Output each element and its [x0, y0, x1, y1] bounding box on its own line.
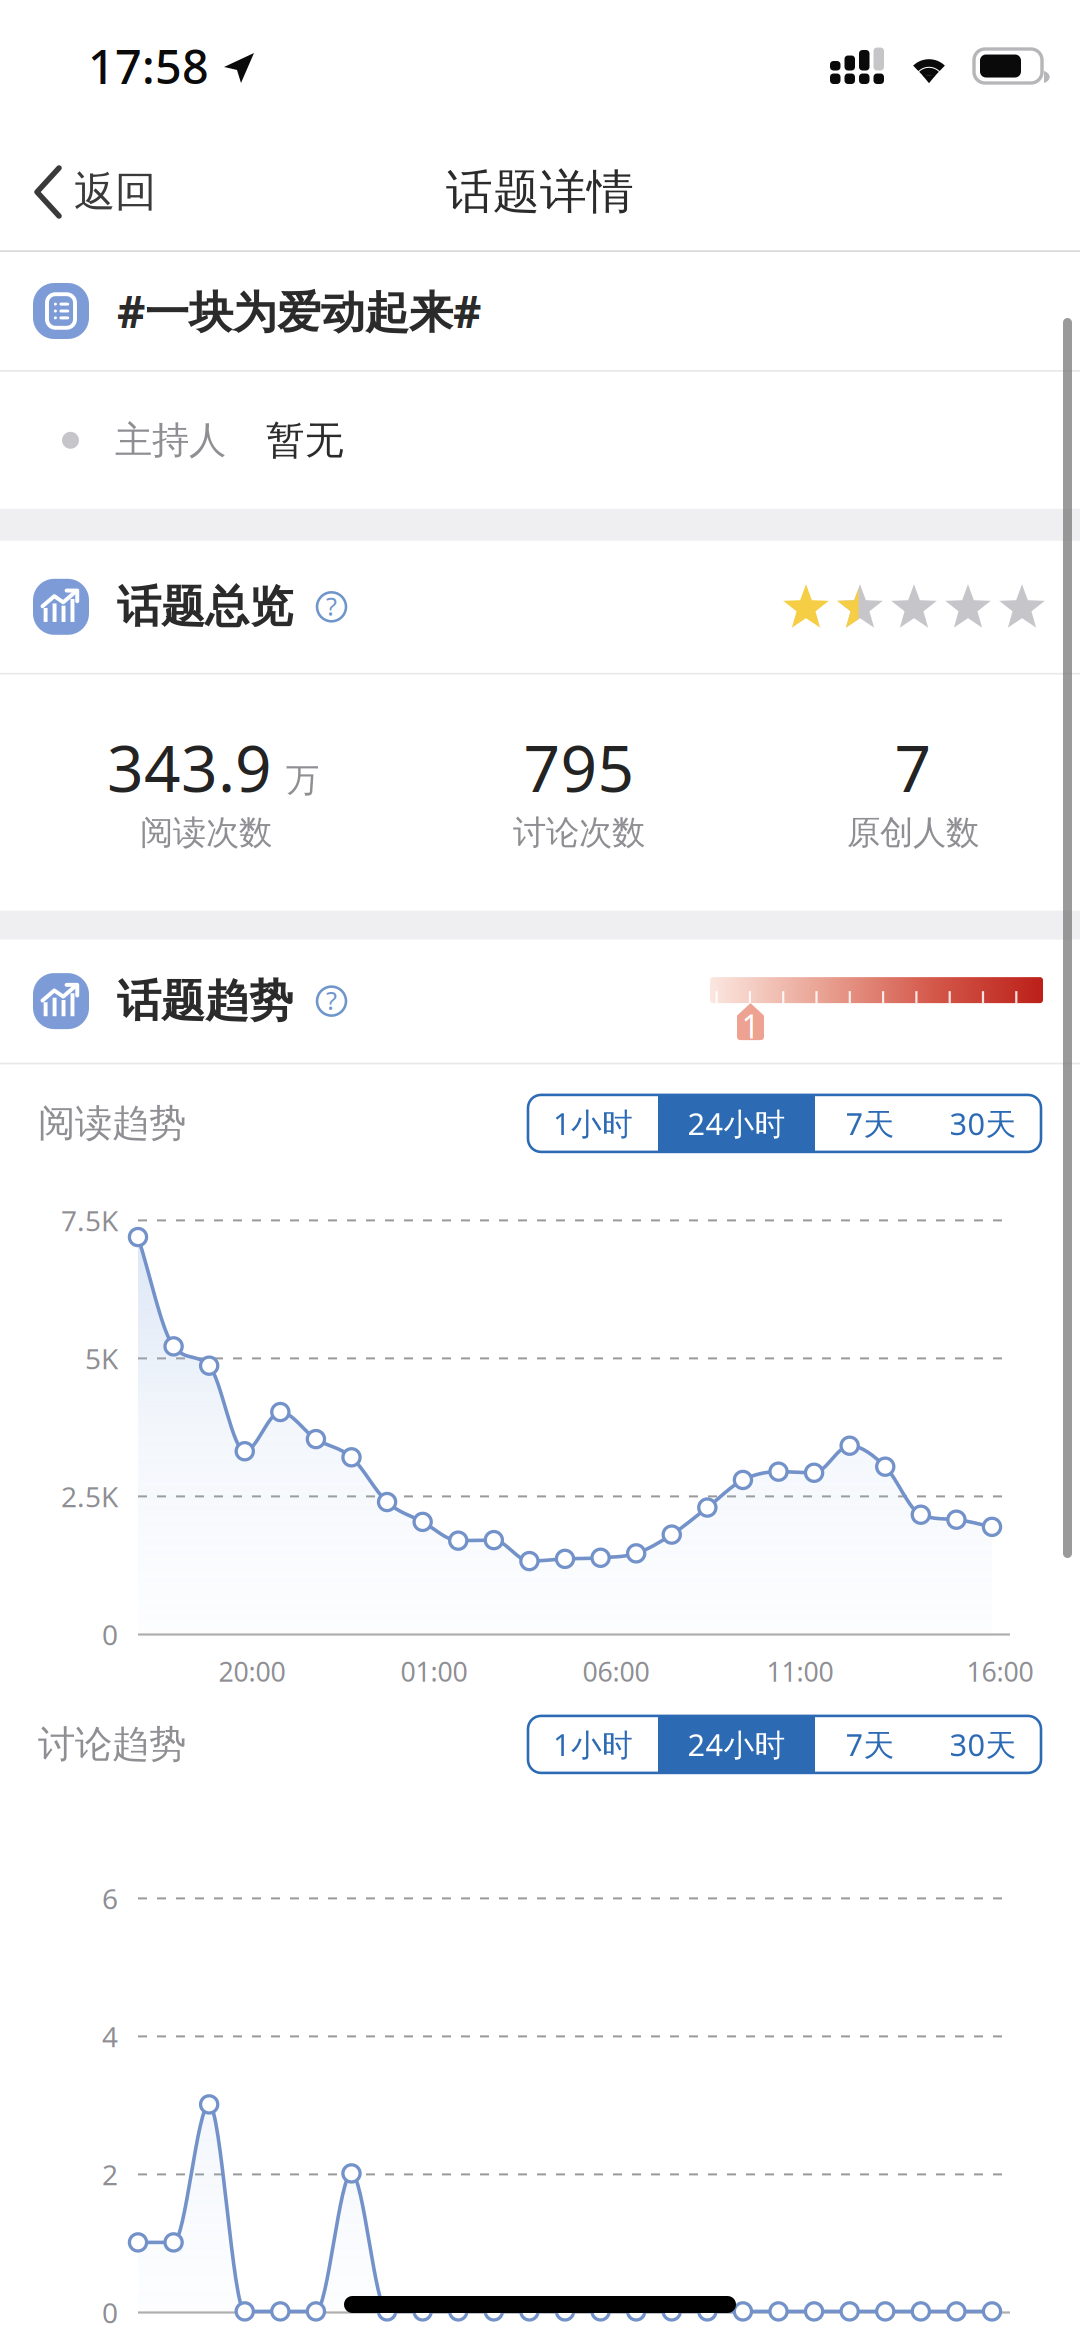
staticText: 万 — [286, 760, 319, 801]
staticText: 795 — [523, 725, 634, 810]
staticText: 24小时 — [687, 1103, 785, 1144]
staticText: 话题详情 — [446, 163, 634, 221]
staticText: 讨论次数 — [513, 812, 645, 853]
staticText: 7.5K — [61, 1202, 118, 1239]
staticText: 话题趋势 — [117, 974, 293, 1028]
staticText: 30天 — [949, 1724, 1016, 1765]
staticText: 30天 — [949, 1103, 1016, 1144]
staticText: #一块为爱动起来# — [117, 282, 481, 340]
staticText: 0 — [102, 1616, 118, 1653]
staticText: 01:00 — [400, 1654, 467, 1689]
staticText: 2.5K — [61, 1478, 118, 1515]
staticText: 20:00 — [218, 1654, 285, 1689]
button[interactable]: 7天 — [815, 1716, 925, 1773]
staticText: 返回 — [74, 167, 156, 217]
staticText: 话题总览 — [117, 580, 293, 634]
staticText: 7 — [894, 725, 931, 810]
button[interactable]: 24小时 — [658, 1095, 815, 1152]
staticText: 讨论趋势 — [38, 1721, 186, 1767]
staticText: 1小时 — [553, 1103, 633, 1144]
staticText: 原创人数 — [847, 812, 979, 853]
staticText: 06:00 — [582, 1654, 649, 1689]
staticText: 24小时 — [687, 1724, 785, 1765]
staticText: 7天 — [845, 1724, 894, 1765]
button[interactable]: 1小时 — [528, 1716, 658, 1773]
staticText: 1 — [741, 1005, 759, 1047]
button[interactable]: 30天 — [925, 1716, 1041, 1773]
staticText: 5K — [85, 1340, 118, 1377]
button[interactable]: 24小时 — [658, 1716, 815, 1773]
staticText: 16:00 — [966, 1654, 1033, 1689]
button[interactable]: 30天 — [925, 1095, 1041, 1152]
button[interactable]: 1小时 — [528, 1095, 658, 1152]
staticText: ? — [326, 983, 337, 1017]
staticText: 主持人 — [115, 417, 226, 463]
button[interactable]: 返回 — [22, 152, 168, 232]
staticText: 0 — [102, 2294, 118, 2331]
staticText: 17:58 — [88, 35, 209, 97]
staticText: 暂无 — [266, 417, 344, 464]
staticText: 7天 — [845, 1103, 894, 1144]
staticText: 4 — [102, 2018, 118, 2055]
staticText: 阅读次数 — [140, 812, 272, 853]
staticText: 11:00 — [766, 1654, 833, 1689]
staticText: ? — [326, 589, 337, 623]
staticText: 6 — [102, 1880, 118, 1917]
button[interactable]: 7天 — [815, 1095, 925, 1152]
staticText: 1小时 — [553, 1724, 633, 1765]
staticText: 2 — [102, 2156, 118, 2193]
staticText: 343.9 — [107, 725, 272, 810]
staticText: 阅读趋势 — [38, 1100, 186, 1146]
